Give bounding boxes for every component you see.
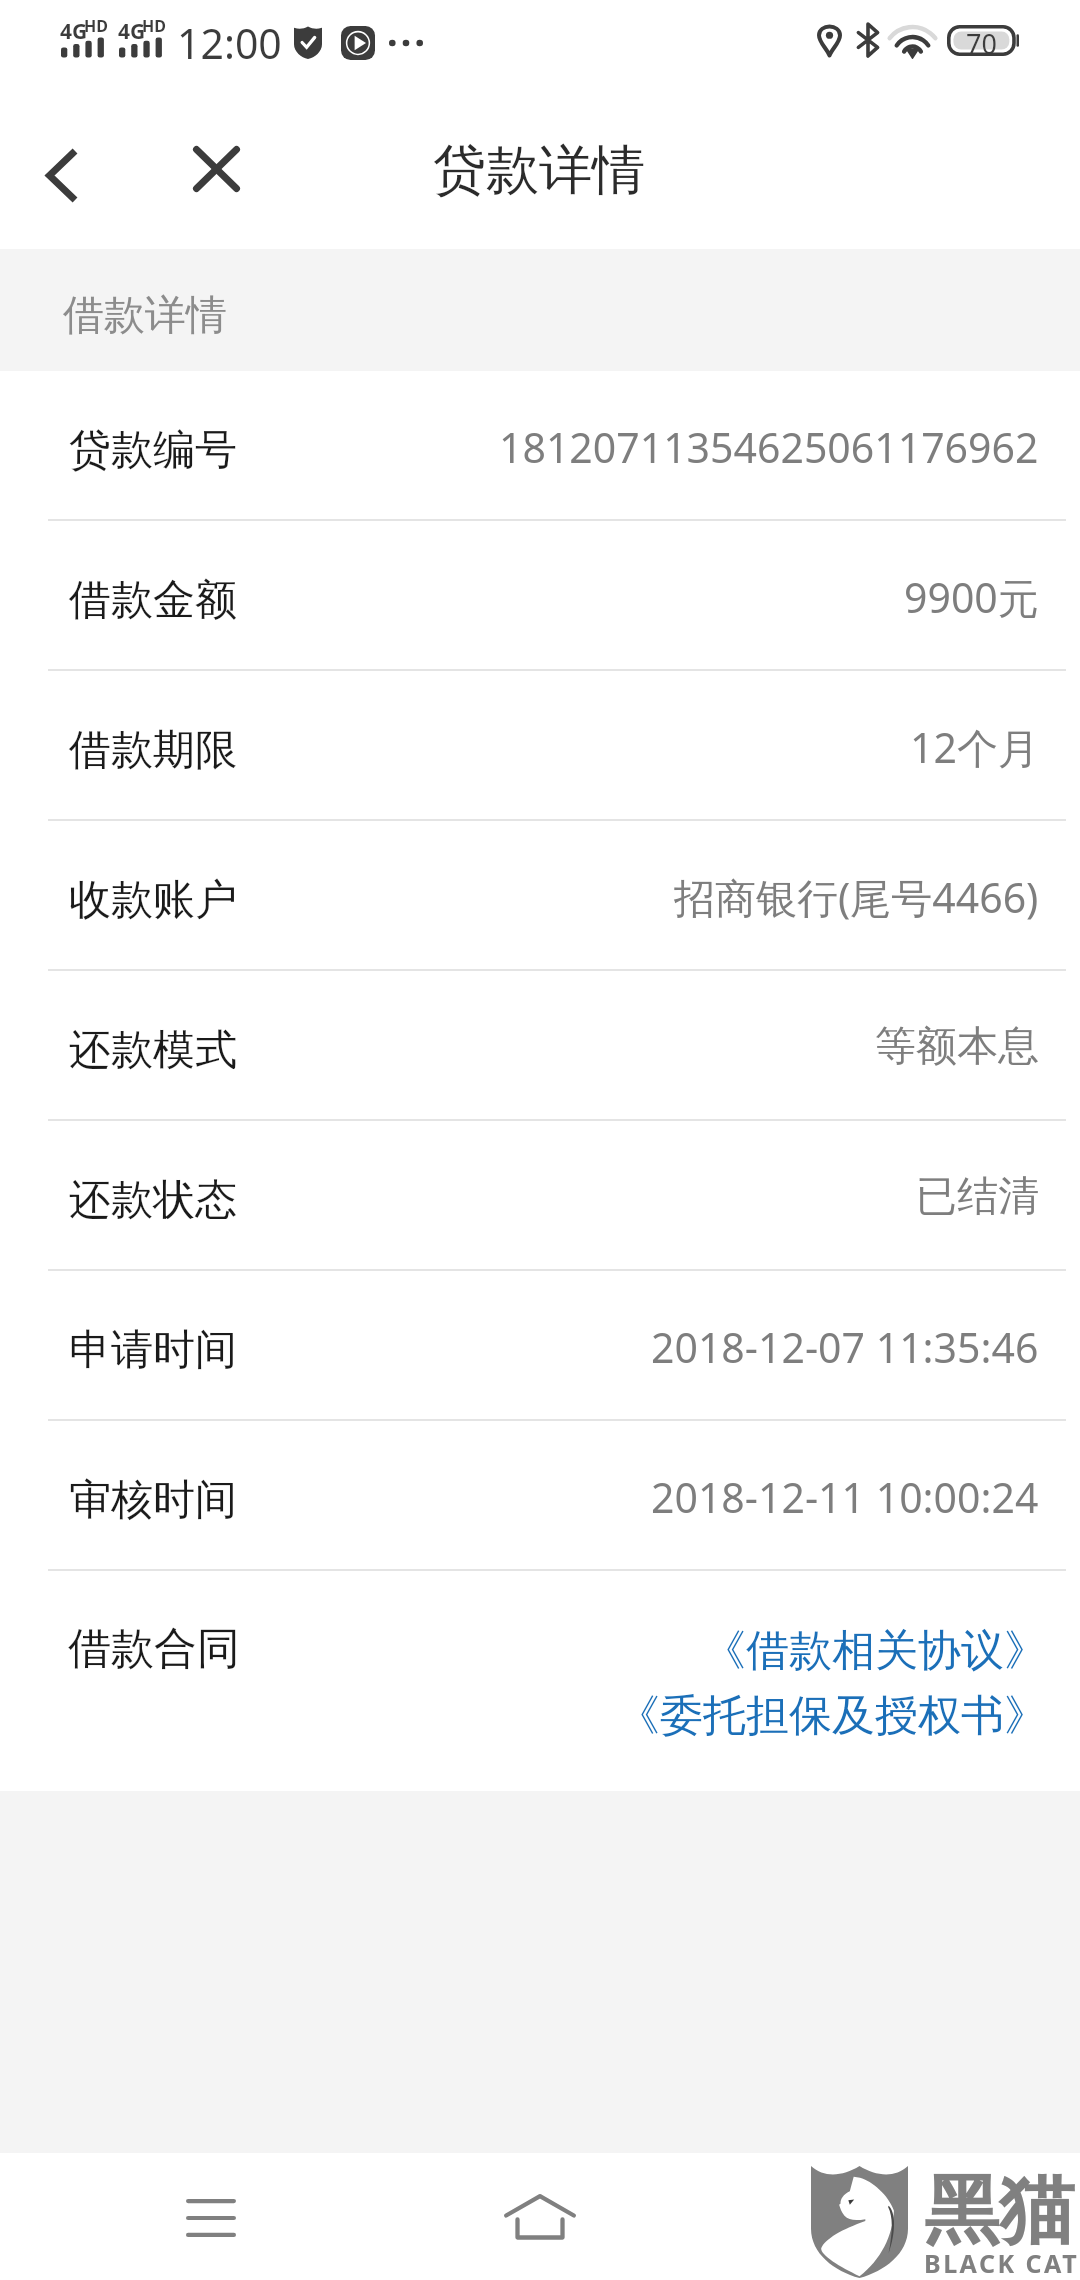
staticText: 还款状态: [69, 1174, 237, 1227]
staticText: BLACK CAT: [924, 2246, 1080, 2280]
staticText: 黑猫: [924, 2164, 1074, 2258]
staticText: 借款期限: [69, 724, 237, 777]
button[interactable]: 借款金额: [0, 521, 1080, 669]
button[interactable]: 贷款编号: [0, 371, 1080, 519]
button[interactable]: Back: [0, 113, 122, 249]
button[interactable]: 审核时间: [0, 1421, 1080, 1569]
staticText: 借款金额: [69, 574, 237, 627]
staticText: 4G: [60, 17, 88, 46]
staticText: 借款详情: [63, 290, 227, 342]
staticText: 12:00: [177, 15, 282, 71]
button[interactable]: 借款期限: [0, 671, 1080, 819]
staticText: HD: [142, 15, 166, 37]
button[interactable]: 申请时间: [0, 1271, 1080, 1419]
button[interactable]: Home: [480, 2153, 600, 2280]
staticText: HD: [84, 15, 108, 37]
staticText: 已结清: [916, 1171, 1039, 1223]
staticText: 9900元: [904, 569, 1039, 625]
staticText: 2018-12-11 10:00:24: [651, 1469, 1039, 1525]
staticText: 贷款详情: [433, 137, 645, 204]
staticText: 70: [966, 25, 997, 56]
staticText: 申请时间: [69, 1324, 237, 1377]
staticText: 还款模式: [69, 1024, 237, 1077]
button[interactable]: 收款账户: [0, 821, 1080, 969]
staticText: 18120711354625061176962: [499, 419, 1039, 475]
button[interactable]: 《借款相关协议》: [703, 1624, 1047, 1678]
staticText: 4G: [118, 17, 146, 46]
button[interactable]: 还款状态: [0, 1121, 1080, 1269]
staticText: 借款合同: [68, 1622, 240, 1676]
staticText: 等额本息: [875, 1021, 1039, 1073]
staticText: 招商银行(尾号4466): [674, 869, 1039, 925]
staticText: 审核时间: [69, 1474, 237, 1527]
staticText: 《借款相关协议》: [703, 1624, 1047, 1678]
button[interactable]: 《委托担保及授权书》: [617, 1689, 1047, 1743]
staticText: 贷款编号: [69, 424, 237, 477]
staticText: 《委托担保及授权书》: [617, 1689, 1047, 1743]
staticText: 收款账户: [69, 874, 237, 927]
button[interactable]: Close: [155, 113, 277, 249]
staticText: 12个月: [910, 719, 1039, 775]
staticText: 2018-12-07 11:35:46: [651, 1319, 1039, 1375]
button[interactable]: 还款模式: [0, 971, 1080, 1119]
button[interactable]: Menu: [151, 2153, 271, 2280]
